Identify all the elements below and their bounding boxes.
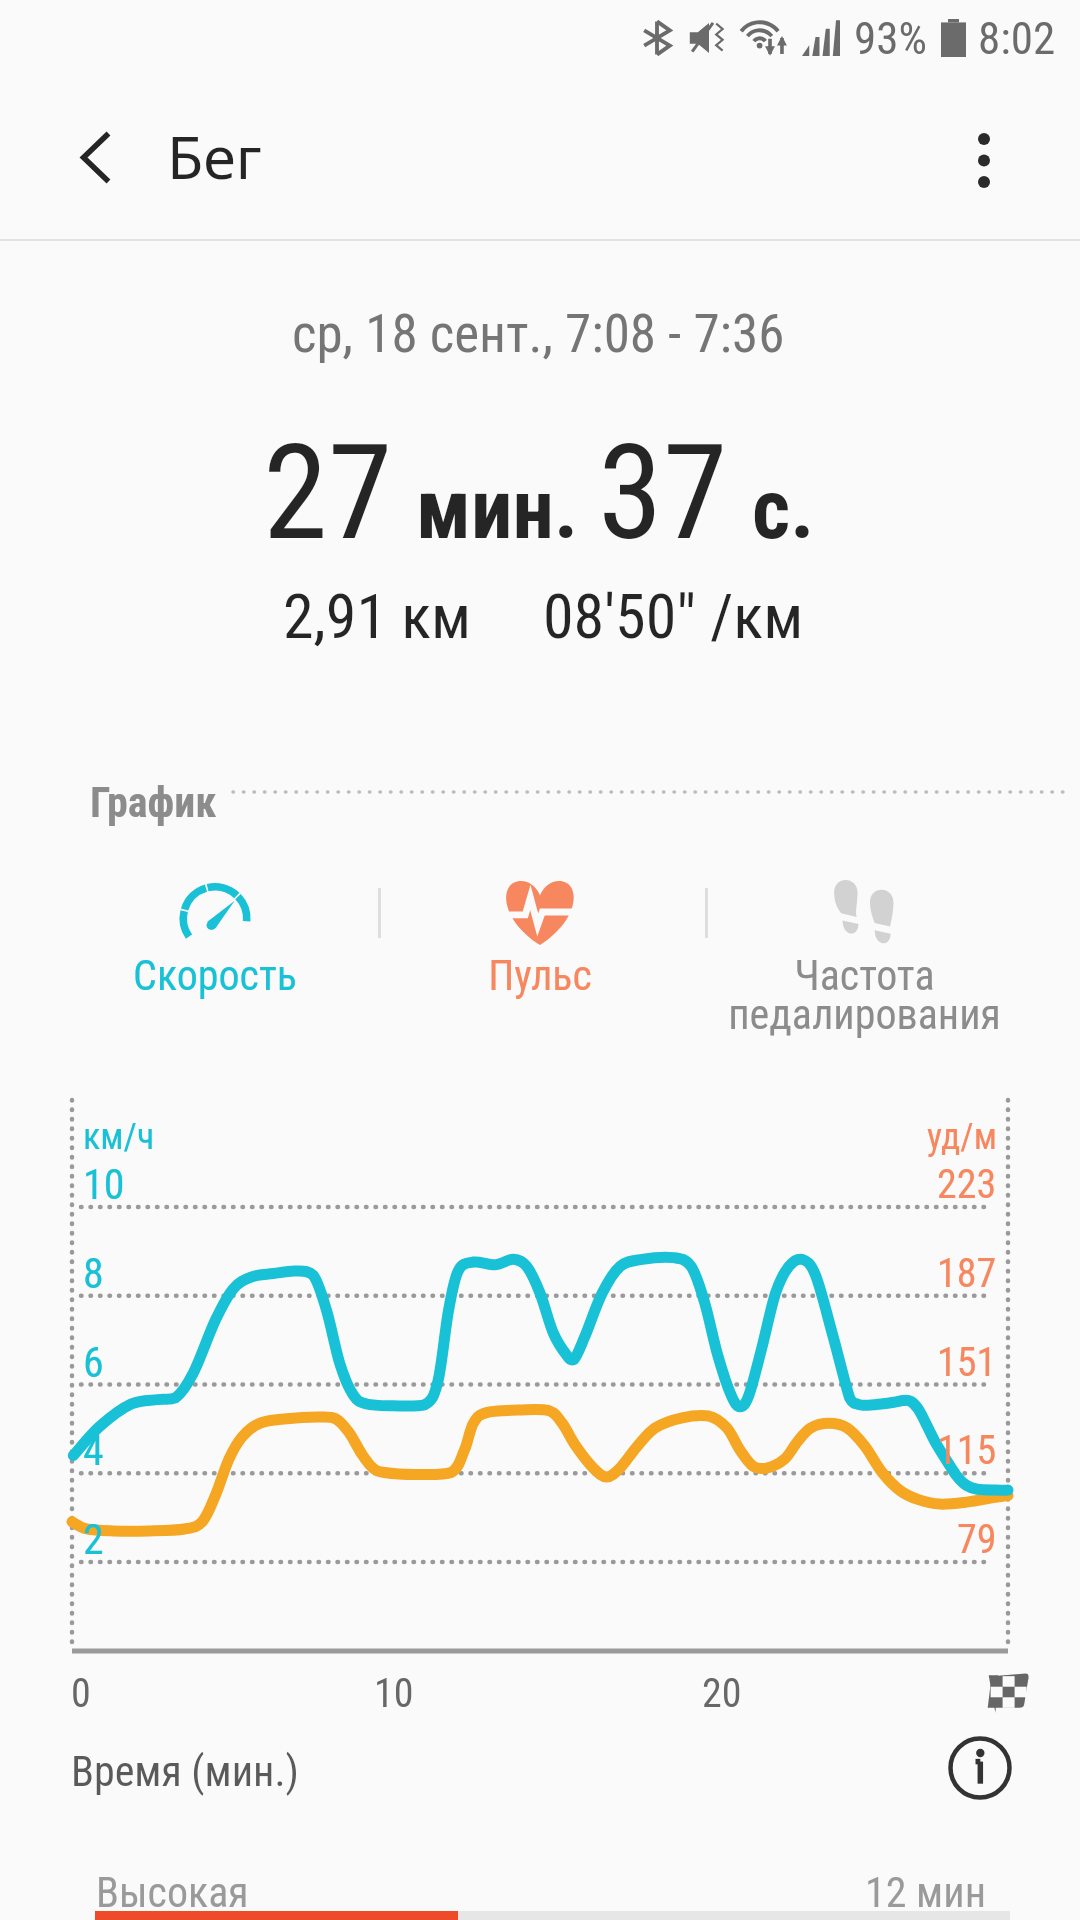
staticText: 37 bbox=[598, 416, 728, 570]
staticText: Высокая bbox=[96, 1868, 249, 1917]
button[interactable]: Back bbox=[47, 109, 143, 205]
staticText: 2,91 км bbox=[283, 580, 472, 653]
staticText: Бег bbox=[167, 116, 262, 196]
staticText: 4 bbox=[83, 1426, 104, 1475]
staticText: Пульс bbox=[488, 951, 592, 1000]
staticText: км/ч bbox=[83, 1116, 155, 1158]
staticText: Время (мин.) bbox=[71, 1747, 299, 1796]
staticText: 151 bbox=[937, 1339, 997, 1386]
staticText: 0 bbox=[71, 1670, 91, 1717]
staticText: уд/м bbox=[927, 1116, 997, 1158]
staticText: ср, 18 сент., 7:08 - 7:36 bbox=[292, 303, 785, 365]
button[interactable]: More options bbox=[940, 116, 1028, 204]
staticText: 6 bbox=[83, 1338, 104, 1387]
staticText: 27 bbox=[263, 416, 393, 570]
button[interactable]: Скорость bbox=[45, 876, 385, 1000]
staticText: 187 bbox=[937, 1250, 997, 1297]
staticText: 223 bbox=[937, 1161, 997, 1208]
button[interactable]: Пульс bbox=[370, 876, 710, 1000]
staticText: 08'50" /км bbox=[543, 580, 804, 653]
staticText: 8 bbox=[83, 1249, 104, 1298]
button[interactable]: Info bbox=[942, 1730, 1018, 1806]
staticText: 10 bbox=[374, 1670, 414, 1717]
staticText: 115 bbox=[937, 1427, 997, 1474]
staticText: с. bbox=[752, 461, 815, 558]
staticText: мин. bbox=[416, 461, 579, 558]
staticText: 20 bbox=[702, 1670, 742, 1717]
staticText: 12 мин bbox=[865, 1868, 986, 1917]
staticText: Частота педалирования bbox=[728, 951, 1001, 1039]
staticText: 8:02 bbox=[978, 12, 1056, 65]
button[interactable]: Частота педалирования bbox=[694, 876, 1034, 1039]
staticText: 79 bbox=[957, 1516, 997, 1563]
staticText: 93% bbox=[854, 12, 927, 65]
staticText: График bbox=[90, 778, 217, 827]
staticText: 2 bbox=[83, 1515, 104, 1564]
staticText: Скорость bbox=[133, 951, 297, 1000]
staticText: 10 bbox=[83, 1160, 125, 1209]
